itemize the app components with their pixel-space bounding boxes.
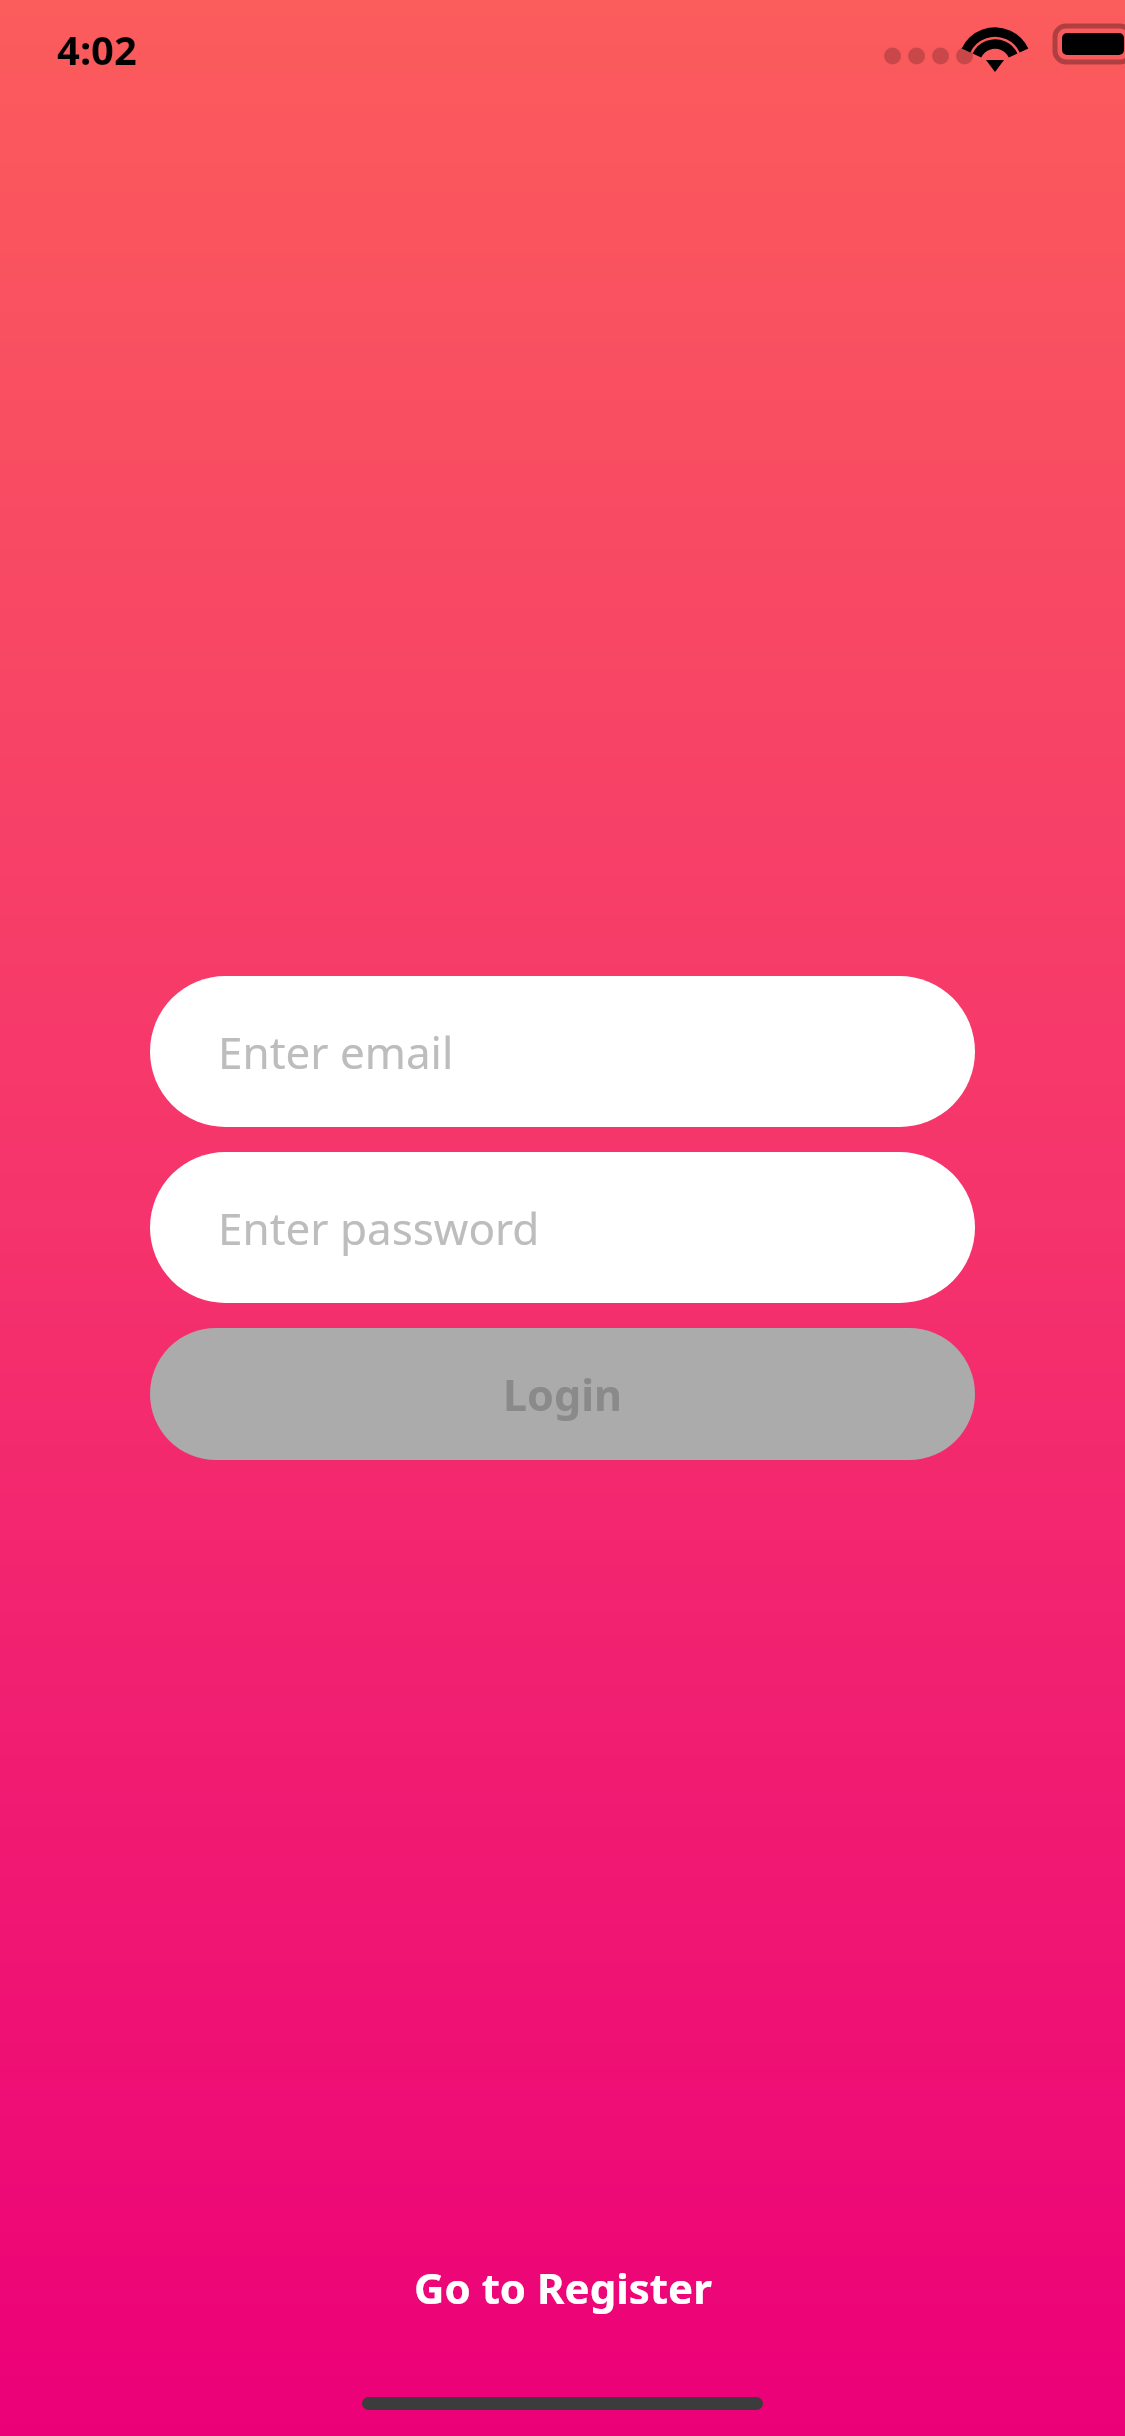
staticText: Login bbox=[503, 1365, 622, 1424]
button[interactable]: Go to Register bbox=[0, 2245, 1125, 2329]
button[interactable]: Enter password bbox=[150, 1152, 975, 1303]
staticText: Enter email bbox=[218, 1022, 454, 1082]
staticText: Go to Register bbox=[414, 2259, 712, 2316]
staticText: Enter password bbox=[218, 1198, 540, 1258]
button[interactable]: Enter email bbox=[150, 976, 975, 1127]
button[interactable]: Login bbox=[150, 1328, 975, 1460]
staticText: 4:02 bbox=[57, 22, 137, 76]
